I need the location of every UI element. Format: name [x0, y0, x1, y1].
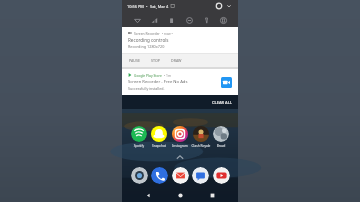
staticText: Clash Royale — [191, 144, 211, 148]
button[interactable]: Snapchat — [149, 126, 169, 148]
button[interactable]: DRAW — [170, 56, 183, 65]
staticText: CLEAR ALL — [212, 100, 232, 105]
button[interactable]: Spotify — [129, 126, 149, 148]
staticText: 10:56 PM — [127, 4, 144, 9]
staticText: Instagram — [170, 144, 190, 148]
button[interactable]: PAUSE — [128, 56, 141, 65]
staticText: Successfully installed. — [128, 86, 165, 91]
staticText: STOP — [151, 58, 160, 63]
button[interactable]: Google Play Store — [122, 69, 238, 95]
staticText: Brawl — [211, 144, 231, 148]
button[interactable]: Recent apps — [206, 189, 218, 201]
staticText: Google Play Store — [134, 73, 162, 77]
button[interactable]: Messages — [192, 167, 209, 184]
button[interactable]: Brawl — [211, 126, 231, 148]
staticText: PAUSE — [129, 58, 140, 63]
button[interactable]: Auto-rotate — [217, 14, 229, 26]
button[interactable]: Battery — [165, 14, 177, 26]
button[interactable]: Wi-Fi — [131, 14, 143, 26]
button[interactable]: Expand — [225, 2, 233, 10]
button[interactable]: Home — [174, 189, 186, 201]
button[interactable]: Phone — [151, 167, 168, 184]
button[interactable]: Camera — [131, 167, 148, 184]
button[interactable]: Do not disturb — [183, 14, 195, 26]
button[interactable]: Instagram — [170, 126, 190, 148]
button[interactable]: Clash Royale — [191, 126, 211, 148]
staticText: Screen Recorder - Free No Ads — [128, 79, 188, 85]
button[interactable]: CLEAR ALL — [206, 97, 238, 108]
staticText: Snapchat — [149, 144, 169, 148]
button[interactable]: Mobile data — [148, 14, 160, 26]
staticText: Recording controls — [128, 37, 169, 43]
button[interactable]: Back — [142, 189, 154, 201]
staticText: Recording 1280x720 — [128, 44, 165, 49]
button[interactable]: Settings — [215, 2, 223, 10]
button[interactable]: STOP — [150, 56, 161, 65]
button[interactable]: Screen Recorder — [122, 27, 238, 53]
button[interactable]: YouTube — [213, 167, 230, 184]
staticText: Spotify — [129, 144, 149, 148]
staticText: Screen Recorder — [134, 31, 160, 35]
button[interactable]: Flashlight — [200, 14, 212, 26]
staticText: • 1m — [164, 73, 172, 77]
staticText: • — [146, 4, 148, 9]
button[interactable]: Gmail — [172, 167, 189, 184]
staticText: DRAW — [171, 58, 182, 63]
staticText: Sat, Mar 4 — [150, 4, 169, 9]
staticText: • now • — [162, 31, 173, 35]
